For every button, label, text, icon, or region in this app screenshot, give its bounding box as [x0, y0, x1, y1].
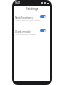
staticText: Settings — [26, 7, 39, 11]
button[interactable]: Settings — [14, 6, 50, 11]
staticText: Allow alerts from apps — [15, 18, 41, 21]
staticText: 9:41 — [15, 1, 21, 5]
button[interactable]: Toggle — [40, 15, 46, 18]
button[interactable]: Notifications — [14, 14, 50, 22]
staticText: Use system theme — [15, 32, 36, 35]
staticText: Notifications — [15, 16, 33, 20]
staticText: Dark mode — [15, 30, 31, 34]
button[interactable]: Toggle — [40, 29, 46, 32]
button[interactable]: Dark mode — [14, 28, 50, 36]
